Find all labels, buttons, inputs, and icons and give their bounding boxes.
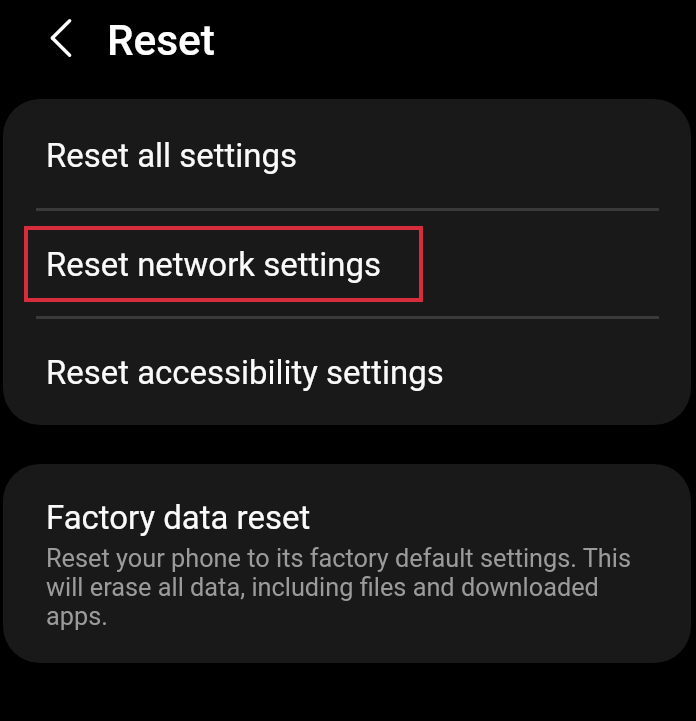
staticText: Reset network settings	[46, 246, 381, 284]
staticText: Factory data reset	[46, 499, 311, 537]
button[interactable]: Reset accessibility settings	[3, 317, 691, 425]
button[interactable]: Navigate up	[25, 2, 97, 74]
button[interactable]: Factory data reset	[3, 464, 691, 663]
button[interactable]: Reset all settings	[3, 99, 691, 209]
staticText: Reset accessibility settings	[46, 354, 444, 392]
staticText: Reset your phone to its factory default …	[46, 544, 651, 631]
staticText: Reset all settings	[46, 137, 297, 175]
button[interactable]: Reset network settings	[3, 209, 691, 317]
staticText: Reset	[107, 17, 215, 65]
